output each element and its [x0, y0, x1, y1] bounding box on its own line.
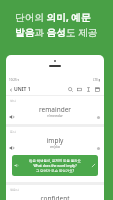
button[interactable]: Bookmark — [96, 115, 101, 120]
other: Play sentence — [14, 163, 19, 168]
staticText: UNIT 1 — [14, 86, 31, 93]
staticText: ɪmˈplaɪ — [6, 145, 104, 149]
staticText: 그 단어가 무슨 뜻인가요? — [19, 168, 91, 173]
button[interactable]: Action 0 — [66, 85, 75, 94]
staticText: 형용사 — [10, 188, 19, 192]
staticText: 단어의 의미, 예문 — [15, 11, 91, 24]
staticText: 명사 — [10, 99, 16, 103]
button[interactable]: Action 2 — [84, 85, 93, 94]
staticText: 많은 학생들이, 문제의 뜻을 몰라요 — [19, 158, 91, 163]
button[interactable]: UNIT 1 — [9, 86, 31, 93]
button[interactable]: Bookmark — [96, 146, 101, 151]
button[interactable]: Action 1 — [75, 85, 84, 94]
button[interactable]: Action 3 — [93, 85, 102, 94]
staticText: remainder — [6, 105, 104, 114]
staticText: 발음과 음성도 제공 — [15, 26, 98, 39]
button[interactable]: Play sentence — [12, 155, 98, 176]
staticText: What does the word imply? — [19, 163, 91, 168]
staticText: imply — [6, 136, 104, 145]
button[interactable]: 동사 — [6, 127, 104, 182]
button[interactable]: 형용사 — [6, 185, 104, 200]
staticText: rɪˈmeɪndər — [6, 114, 104, 118]
button[interactable]: 명사 — [6, 96, 104, 124]
button[interactable]: Play pronunciation — [9, 114, 15, 120]
staticText: 동사 — [10, 130, 16, 134]
staticText: confident — [6, 194, 104, 200]
button[interactable]: Play pronunciation — [9, 145, 15, 151]
staticText: 10:25 ▾ — [9, 78, 19, 82]
staticText: LTE ▮ — [93, 78, 101, 82]
other: Edit — [91, 163, 96, 168]
